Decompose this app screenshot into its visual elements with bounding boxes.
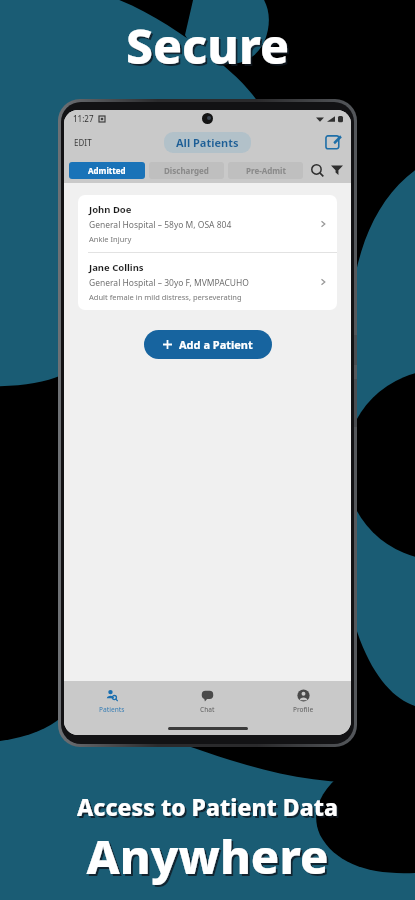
staticText: Anywhere [2,826,415,890]
staticText: Jane Collins [89,261,144,274]
button[interactable]: Profile [255,681,351,721]
button[interactable]: Search [308,161,326,179]
staticText: Discharged [164,165,209,176]
button[interactable]: Filter [328,161,346,179]
button[interactable]: All Patients [164,132,251,153]
button[interactable]: Compose [315,134,351,150]
button[interactable]: Add a Patient [144,330,272,359]
button[interactable]: Jane Collins [78,253,337,310]
staticText: Patients [99,705,125,714]
button[interactable]: EDIT [64,131,102,154]
button[interactable]: Patients [64,681,159,721]
staticText: Secure [2,15,415,80]
staticText: General Hospital – 58yo M, OSA 804 [89,219,232,231]
staticText: Add a Patient [179,337,253,352]
staticText: Secure [0,13,415,78]
button[interactable]: Discharged [149,162,224,179]
staticText: General Hospital – 30yo F, MVMPACUHO [89,277,249,289]
staticText: Ankle Injury [89,234,132,244]
staticText: Admitted [88,165,126,176]
staticText: Pre-Admit [246,165,286,176]
staticText: Access to Patient Data [0,791,415,822]
staticText: Adult female in mild distress, persevera… [89,292,242,302]
button[interactable]: Chat [159,681,255,721]
staticText: All Patients [176,135,239,150]
staticText: Access to Patient Data [2,793,415,824]
staticText: Chat [200,705,215,714]
staticText: John Doe [89,203,132,216]
staticText: 11:27 [73,113,94,124]
button[interactable]: Admitted [69,162,145,179]
button[interactable]: Pre-Admit [228,162,303,179]
staticText: Profile [293,705,314,714]
staticText: EDIT [74,137,92,148]
staticText: Anywhere [0,824,415,888]
button[interactable]: John Doe [78,195,337,252]
